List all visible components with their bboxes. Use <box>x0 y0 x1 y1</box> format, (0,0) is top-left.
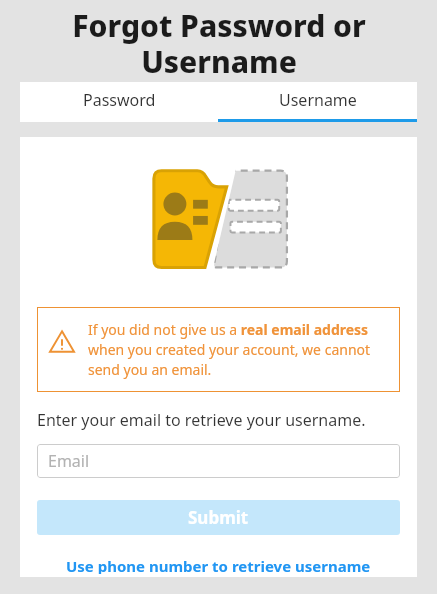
staticText: Email <box>48 450 90 472</box>
button[interactable]: Username <box>218 82 417 122</box>
button[interactable]: Password <box>20 82 218 122</box>
staticText: Forgot Password or Username <box>72 5 366 82</box>
button[interactable]: Submit <box>37 500 400 535</box>
staticText: Enter your email to retrieve your userna… <box>37 409 366 431</box>
staticText: If you did not give us a real email addr… <box>88 320 390 379</box>
staticText: Username <box>279 89 357 111</box>
staticText: Use phone number to retrieve username <box>66 556 371 574</box>
staticText: Submit <box>188 506 249 529</box>
button[interactable]: Email <box>37 444 400 478</box>
button[interactable]: Use phone number to retrieve username <box>58 553 379 577</box>
staticText: Password <box>83 89 156 111</box>
